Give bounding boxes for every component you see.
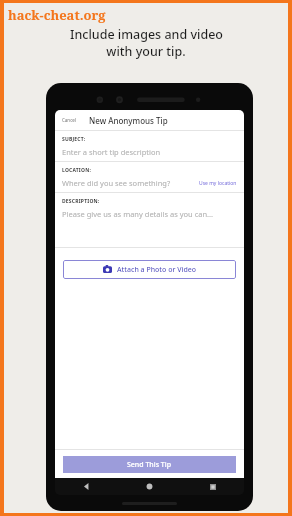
- button[interactable]: Attach a Photo or Video: [63, 260, 236, 279]
- button[interactable]: Home: [118, 478, 181, 495]
- staticText: Use my location: [199, 180, 237, 187]
- staticText: Include images and video: [70, 26, 223, 43]
- staticText: Where did you see something?: [62, 178, 171, 188]
- staticText: hack-cheat.org: [8, 6, 106, 24]
- staticText: LOCATION:: [62, 167, 92, 174]
- staticText: Send This Tip: [127, 460, 172, 470]
- button[interactable]: Recents: [181, 478, 244, 495]
- staticText: with your tip.: [106, 43, 186, 60]
- staticText: Cancel: [62, 117, 77, 123]
- button[interactable]: Send This Tip: [63, 456, 236, 473]
- staticText: Please give us as many details as you ca…: [62, 209, 214, 219]
- staticText: SUBJECT:: [62, 136, 86, 143]
- staticText: Enter a short tip description: [62, 147, 161, 157]
- button[interactable]: Cancel: [55, 110, 244, 130]
- button[interactable]: SUBJECT:: [55, 131, 244, 161]
- staticText: New Anonymous Tip: [89, 115, 168, 126]
- button[interactable]: DESCRIPTION:: [55, 193, 244, 219]
- button[interactable]: LOCATION:: [55, 162, 244, 192]
- button[interactable]: Use my location: [199, 180, 237, 187]
- staticText: DESCRIPTION:: [62, 198, 100, 205]
- button[interactable]: Back: [55, 478, 118, 495]
- staticText: Attach a Photo or Video: [117, 265, 197, 275]
